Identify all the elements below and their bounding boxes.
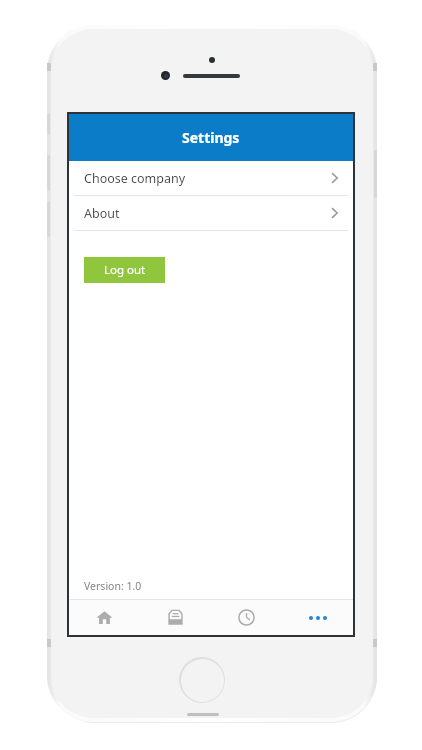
button[interactable]: Home <box>69 600 140 635</box>
staticText: Settings <box>182 128 240 147</box>
button[interactable]: Inbox <box>140 600 211 635</box>
button[interactable]: More <box>282 600 353 635</box>
staticText: Version: 1.0 <box>84 579 142 593</box>
staticText: About <box>84 205 120 222</box>
button[interactable]: History <box>211 600 282 635</box>
staticText: Log out <box>104 262 146 278</box>
button[interactable]: Choose company <box>69 161 353 195</box>
button[interactable]: About <box>69 196 353 230</box>
staticText: Choose company <box>84 170 186 187</box>
button[interactable]: Log out <box>84 257 165 283</box>
